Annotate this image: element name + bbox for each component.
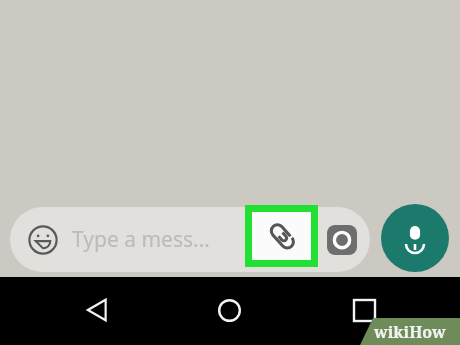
button[interactable]: Type a mess... [72,207,252,272]
staticText: Type a mess... [72,225,210,254]
button[interactable]: Camera [325,223,359,257]
button[interactable]: Attach [245,205,318,267]
button[interactable]: Recent apps [334,280,394,340]
button[interactable]: Home [199,280,259,340]
button[interactable]: Voice message [381,204,449,272]
button[interactable]: Emoji [24,221,62,259]
button[interactable]: Back [67,280,127,340]
staticText: wikiHow [374,321,446,343]
